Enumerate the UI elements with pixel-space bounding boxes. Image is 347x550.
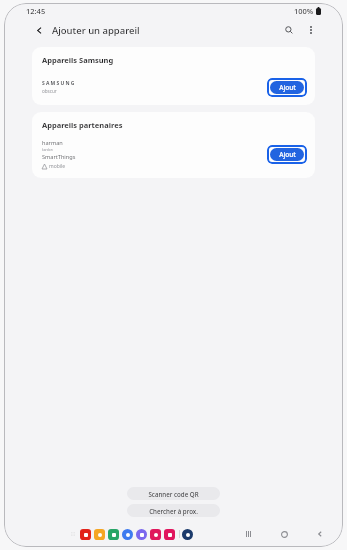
button[interactable]: Récents xyxy=(241,527,255,541)
button[interactable]: Ajout xyxy=(270,81,304,94)
button[interactable]: Application 6 xyxy=(164,529,175,540)
staticText: Ajouter un appareil xyxy=(52,24,140,37)
button[interactable]: Chercher à prox. xyxy=(127,504,220,517)
staticText: mobile xyxy=(49,163,66,170)
staticText: Ajout xyxy=(279,150,296,159)
button[interactable]: Scanner code QR xyxy=(127,487,220,500)
button[interactable]: Application 4 xyxy=(136,529,147,540)
button[interactable]: Application 3 xyxy=(122,529,133,540)
staticText: SmartThings xyxy=(42,153,76,161)
staticText: 100% xyxy=(294,6,314,16)
staticText: harman xyxy=(42,139,63,147)
button[interactable]: Plus d'options xyxy=(303,22,319,38)
button[interactable]: Application 1 xyxy=(94,529,105,540)
button[interactable]: Application 7 xyxy=(182,529,193,540)
staticText: Scanner code QR xyxy=(148,490,199,498)
staticText: Appareils Samsung xyxy=(42,55,114,65)
button[interactable]: Application 5 xyxy=(150,529,161,540)
staticText: kardon xyxy=(42,148,53,152)
staticText: obscur xyxy=(42,88,57,94)
staticText: SAMSUNG xyxy=(42,80,76,87)
button[interactable]: Rechercher xyxy=(281,22,297,38)
staticText: Appareils partenaires xyxy=(42,120,123,130)
staticText: Chercher à prox. xyxy=(149,507,198,515)
button[interactable]: Retour xyxy=(32,23,46,37)
staticText: 12:45 xyxy=(26,6,46,16)
staticText: Ajout xyxy=(279,83,296,92)
button[interactable]: Application 2 xyxy=(108,529,119,540)
button[interactable]: Retour xyxy=(313,527,327,541)
button[interactable]: Ajout xyxy=(270,148,304,161)
button[interactable]: Application 0 xyxy=(80,529,91,540)
button[interactable]: Applications xyxy=(70,531,76,537)
button[interactable]: Accueil xyxy=(277,527,291,541)
